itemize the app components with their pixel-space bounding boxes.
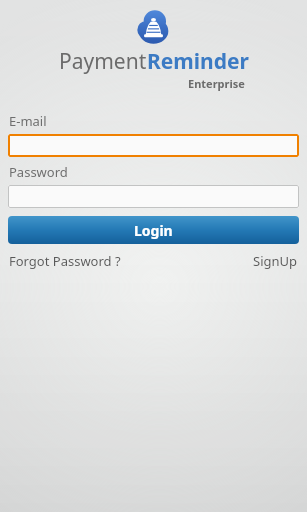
staticText: Enterprise <box>188 76 245 91</box>
button[interactable]: E-mail input <box>8 134 299 157</box>
staticText: Login <box>134 221 173 240</box>
staticText: Password <box>9 163 68 181</box>
other: Payment Reminder logo <box>137 10 170 44</box>
button[interactable]: SignUp <box>253 252 298 270</box>
staticText: SignUp <box>253 252 298 270</box>
staticText: Reminder <box>147 47 249 76</box>
button[interactable]: Login <box>8 216 299 244</box>
staticText: Payment <box>59 47 147 76</box>
staticText: Forgot Password ? <box>9 252 121 270</box>
button[interactable]: Password input <box>8 185 299 208</box>
button[interactable]: Forgot Password ? <box>9 252 121 270</box>
staticText: E-mail <box>9 112 47 130</box>
